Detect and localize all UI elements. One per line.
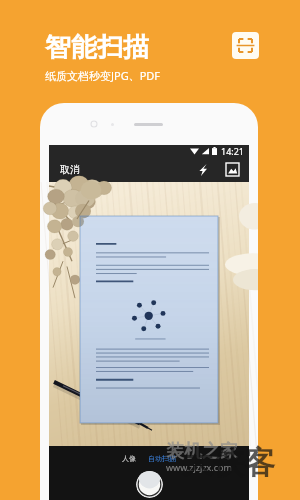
staticText: 取消 xyxy=(60,163,80,176)
staticText: 纸质文档秒变JPG、PDF xyxy=(45,68,161,83)
staticText: 大侠客 xyxy=(182,443,275,482)
staticText: 智能扫描 xyxy=(45,31,149,64)
staticText: 装机之家 xyxy=(166,440,238,463)
button[interactable]: 取消 xyxy=(58,161,82,178)
button[interactable]: 人像 xyxy=(116,452,142,465)
staticText: www.zjzjzx.com xyxy=(166,461,232,473)
button[interactable]: Scanner app icon xyxy=(232,32,259,59)
staticText: 人像 xyxy=(122,454,136,463)
staticText: 自动扫描 xyxy=(148,454,176,463)
button[interactable]: Shutter xyxy=(136,471,163,498)
button[interactable]: Flash xyxy=(193,160,212,179)
button[interactable]: 自动扫描 xyxy=(142,452,182,465)
button[interactable]: Gallery xyxy=(223,160,242,179)
staticText: 14:21 xyxy=(221,145,245,157)
